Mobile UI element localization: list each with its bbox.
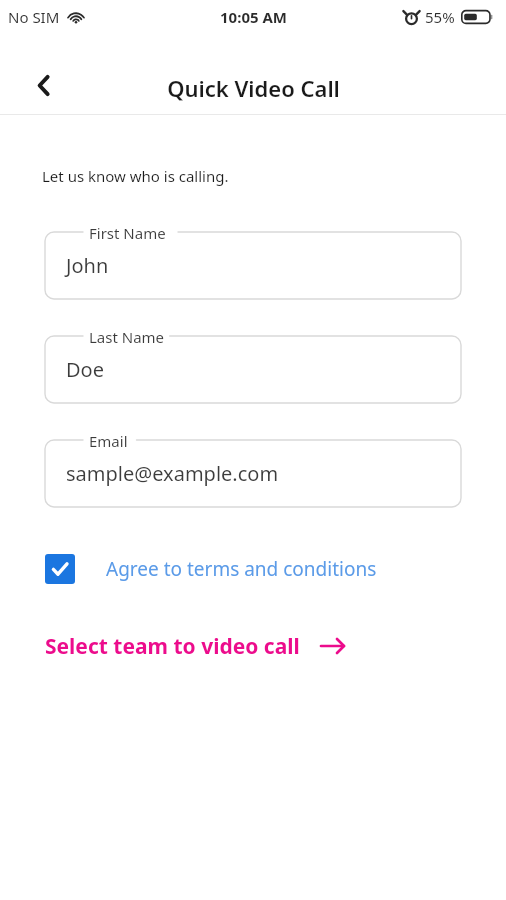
button[interactable]: Email	[45, 440, 461, 507]
other: Go to select team	[320, 636, 346, 656]
staticText: Email	[89, 431, 128, 451]
button[interactable]: First Name	[45, 232, 461, 299]
staticText: 55%	[425, 7, 455, 27]
staticText: Doe	[66, 356, 104, 383]
button[interactable]: Agree to terms and conditions	[45, 550, 445, 588]
button[interactable]: Last Name	[45, 336, 461, 403]
staticText: 10:05 AM	[220, 7, 287, 27]
staticText: Quick Video Call	[167, 73, 340, 103]
staticText: Let us know who is calling.	[42, 166, 229, 186]
staticText: First Name	[89, 223, 166, 243]
staticText: John	[66, 252, 109, 279]
button[interactable]: Select team to video call	[45, 627, 385, 665]
staticText: No SIM	[8, 7, 60, 27]
button[interactable]: Back	[22, 64, 64, 106]
staticText: Agree to terms and conditions	[106, 556, 377, 582]
staticText: Last Name	[89, 327, 165, 347]
staticText: Select team to video call	[45, 632, 300, 661]
staticText: sample@example.com	[66, 460, 279, 487]
